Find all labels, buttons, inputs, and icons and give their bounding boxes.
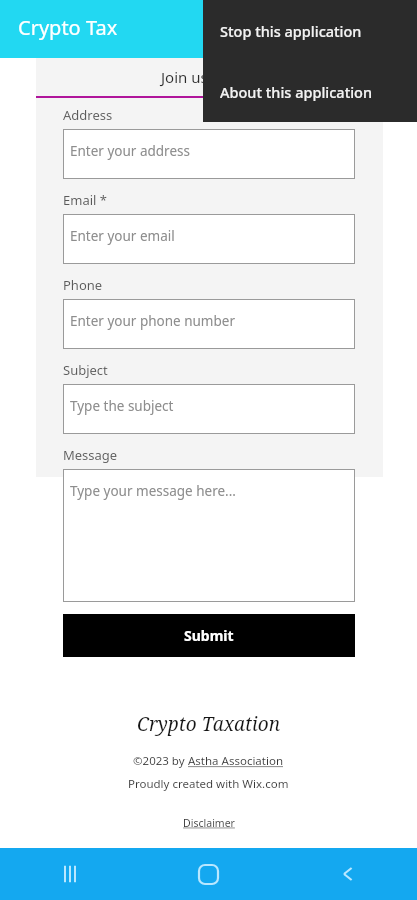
staticText: Enter your address	[70, 142, 190, 160]
button[interactable]: About this application	[203, 61, 417, 122]
staticText: ©2023 by	[133, 753, 188, 769]
button[interactable]: Type the subject	[63, 384, 355, 434]
button[interactable]: Home	[139, 848, 278, 900]
button[interactable]: Crypto Tax	[0, 0, 417, 58]
button[interactable]: Recent apps	[0, 848, 139, 900]
button[interactable]: Back	[278, 848, 417, 900]
staticText: Join us on the	[161, 67, 257, 87]
staticText: Message	[63, 446, 118, 464]
staticText: Type the subject	[70, 397, 174, 415]
staticText: Crypto Taxation	[137, 711, 281, 737]
button[interactable]: Enter your email	[63, 214, 355, 264]
button[interactable]: Stop this application	[203, 0, 417, 61]
staticText: Submit	[184, 626, 234, 645]
button[interactable]: Disclaimer	[183, 816, 235, 830]
staticText: Type your message here...	[70, 482, 236, 500]
button[interactable]: Submit	[63, 614, 355, 657]
button[interactable]: Enter your phone number	[63, 299, 355, 349]
staticText: About this application	[220, 82, 373, 102]
staticText: Subject	[63, 361, 108, 379]
staticText: Enter your phone number	[70, 312, 235, 330]
staticText: Address	[63, 106, 113, 124]
button[interactable]: Type your message here...	[63, 469, 355, 602]
staticText: Proudly created with Wix.com	[128, 776, 289, 792]
button[interactable]: Join us on the	[0, 58, 417, 96]
staticText: Crypto Tax	[18, 14, 118, 41]
button[interactable]: Enter your address	[63, 129, 355, 179]
button[interactable]: Astha Association	[188, 753, 284, 769]
staticText: Enter your email	[70, 227, 175, 245]
staticText: Phone	[63, 276, 103, 294]
staticText: Stop this application	[220, 21, 362, 41]
staticText: Email *	[63, 191, 107, 209]
